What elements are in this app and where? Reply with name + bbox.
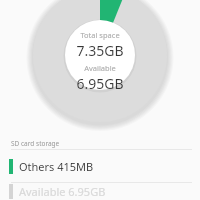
staticText: Others 415MB bbox=[19, 159, 94, 174]
button[interactable]: Total space bbox=[0, 0, 200, 126]
staticText: Available 6.95GB bbox=[19, 184, 106, 199]
button[interactable]: Available 6.95GB bbox=[0, 183, 200, 200]
staticText: 6.95GB bbox=[76, 74, 124, 93]
staticText: SD card storage bbox=[11, 139, 60, 148]
button[interactable]: Others 415MB bbox=[0, 150, 200, 182]
staticText: 7.35GB bbox=[76, 41, 124, 60]
staticText: Total space bbox=[80, 30, 120, 40]
staticText: Available bbox=[84, 63, 116, 73]
